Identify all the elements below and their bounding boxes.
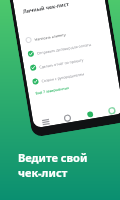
staticText: Личный чек-лист: [22, 0, 70, 15]
button[interactable]: Ещё 7 завершённых: [35, 85, 69, 95]
button[interactable]: Profile: [99, 101, 120, 117]
staticText: Написать клиенту: [34, 32, 67, 42]
button[interactable]: Сделать отчёт по проекту: [23, 47, 115, 76]
button[interactable]: Написать клиенту: [19, 20, 111, 48]
staticText: Сделать отчёт по проекту: [39, 57, 84, 70]
button[interactable]: Calendar: [55, 108, 79, 124]
staticText: чек-лист: [18, 165, 68, 180]
staticText: Созвон с руководителем: [41, 71, 85, 83]
staticText: Ведите свой: [18, 150, 88, 165]
staticText: Отправить договор для оплаты: [36, 42, 93, 56]
button[interactable]: Chats: [77, 104, 101, 121]
button[interactable]: Отправить договор для оплаты: [21, 33, 113, 62]
button[interactable]: Tasks: [33, 112, 57, 128]
button[interactable]: Созвон с руководителем: [25, 61, 118, 90]
staticText: Ещё 7 завершённых: [35, 85, 69, 95]
